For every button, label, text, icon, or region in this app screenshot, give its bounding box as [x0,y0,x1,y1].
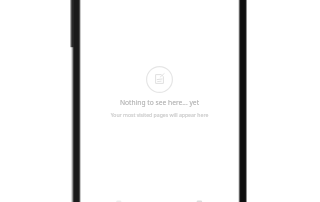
button[interactable]: No pages yet [146,66,173,93]
staticText: Your most visited pages will appear here [80,111,239,118]
button[interactable]: Top sites [80,188,159,202]
staticText: Nothing to see here... yet [80,98,239,107]
